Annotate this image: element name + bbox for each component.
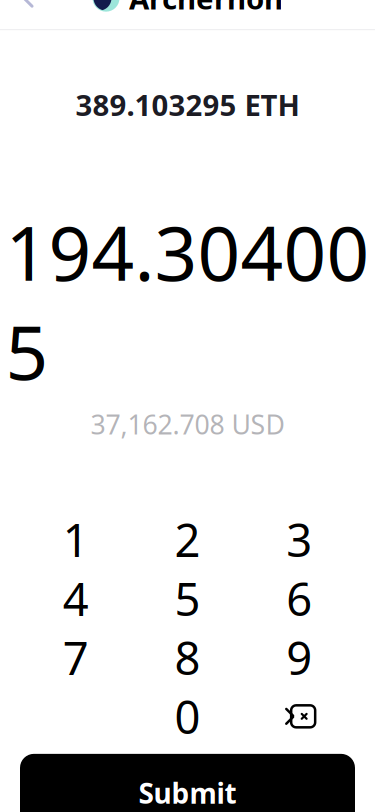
- button[interactable]: 5: [132, 569, 243, 628]
- button[interactable]: Submit: [20, 754, 355, 812]
- staticText: 7: [63, 627, 89, 687]
- button[interactable]: 2: [132, 510, 243, 569]
- staticText: 2: [174, 509, 200, 569]
- staticText: 9: [286, 627, 312, 687]
- button[interactable]: Back: [10, 0, 62, 20]
- staticText: 0: [174, 686, 200, 746]
- button[interactable]: 8: [132, 628, 243, 687]
- button[interactable]: 9: [243, 628, 355, 687]
- staticText: 4: [63, 568, 89, 628]
- button[interactable]: 0: [132, 687, 243, 746]
- staticText: 5: [174, 568, 200, 628]
- staticText: 8: [174, 627, 200, 687]
- staticText: 1: [63, 509, 89, 569]
- button[interactable]: 6: [243, 569, 355, 628]
- staticText: 3: [286, 509, 312, 569]
- staticText: Submit: [138, 774, 236, 811]
- button[interactable]: Delete: [243, 687, 355, 746]
- staticText: 6: [286, 568, 312, 628]
- staticText: Archernon: [129, 0, 283, 18]
- button[interactable]: 7: [20, 628, 132, 687]
- button[interactable]: 1: [20, 510, 132, 569]
- staticText: 194.304005: [5, 202, 369, 400]
- staticText: 37,162.708 USD: [90, 406, 284, 442]
- staticText: 389.103295 ETH: [75, 85, 299, 124]
- button[interactable]: 3: [243, 510, 355, 569]
- button[interactable]: 4: [20, 569, 132, 628]
